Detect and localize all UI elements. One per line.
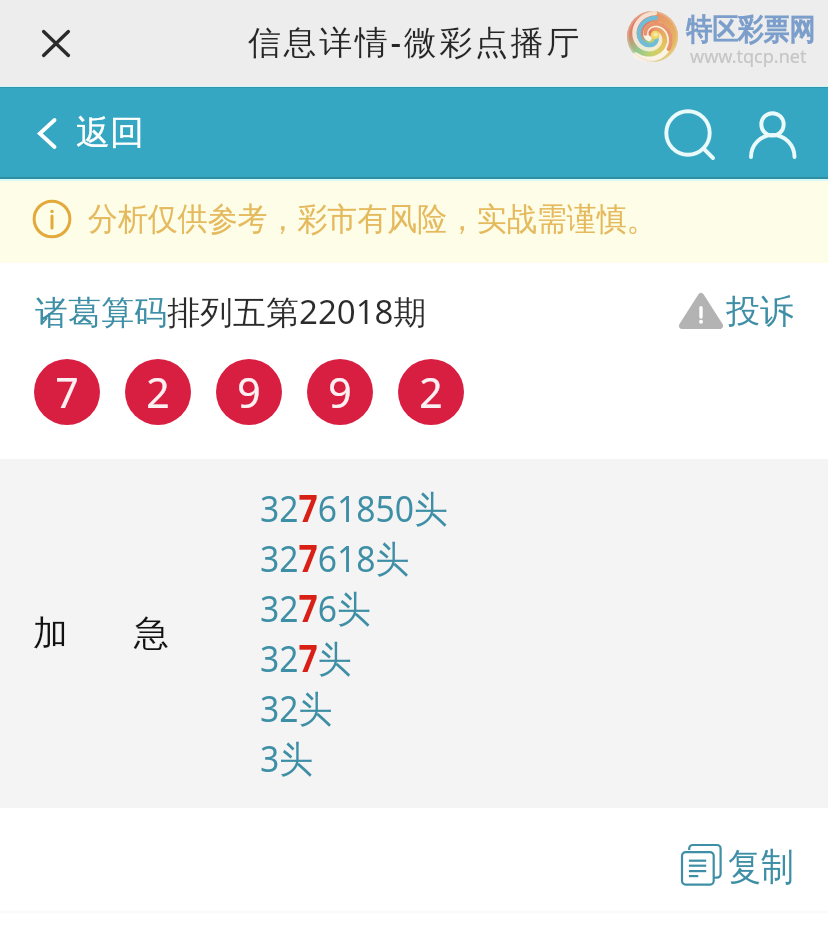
staticText: 复制 (728, 843, 794, 891)
staticText: 加 (33, 611, 68, 655)
button[interactable]: 复制 (660, 828, 820, 900)
staticText: www.tqcp.net (690, 44, 807, 69)
button[interactable]: 2 (398, 359, 464, 425)
staticText: 7 (55, 364, 79, 420)
staticText: 3276头 (260, 582, 371, 633)
staticText: 返回 (76, 111, 144, 154)
staticText: 9 (328, 364, 352, 420)
staticText: 信息详情-微彩点播厅 (248, 19, 582, 64)
button[interactable]: Search (658, 108, 714, 164)
button[interactable]: Close (26, 13, 86, 73)
staticText: 特区彩票网 (686, 11, 815, 49)
staticText: 投诉 (726, 290, 794, 333)
staticText: 2 (146, 364, 170, 420)
staticText: 分析仅供参考，彩市有风险，实战需谨慎。 (88, 199, 656, 239)
button[interactable]: 7 (34, 359, 100, 425)
button[interactable]: 2 (125, 359, 191, 425)
staticText: 急 (134, 611, 169, 655)
staticText: 32761850头 (260, 482, 448, 533)
button[interactable]: 9 (216, 359, 282, 425)
staticText: 2 (419, 364, 443, 420)
staticText: 327头 (260, 632, 352, 683)
staticText: 诸葛算码排列五第22018期 (35, 289, 427, 334)
staticText: 9 (237, 364, 261, 420)
staticText: 32头 (260, 682, 333, 733)
button[interactable]: Account (743, 106, 803, 166)
staticText: 3头 (260, 732, 314, 783)
button[interactable]: 返回 (38, 88, 144, 178)
staticText: 327618头 (260, 532, 409, 583)
button[interactable]: 投诉 (679, 287, 794, 335)
button[interactable]: 9 (307, 359, 373, 425)
